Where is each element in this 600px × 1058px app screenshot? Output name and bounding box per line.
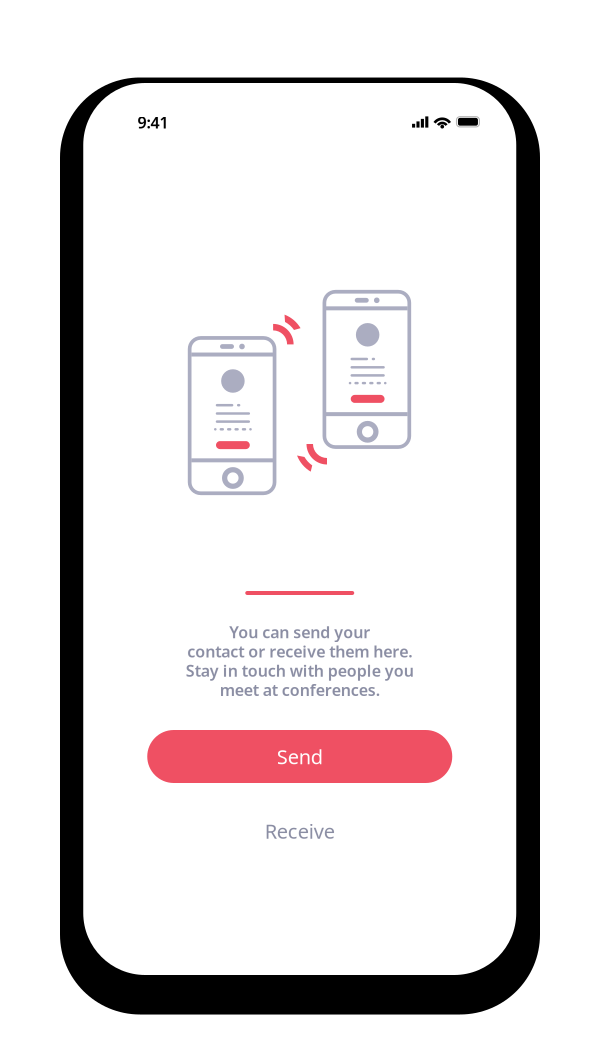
button[interactable]: Receive: [230, 809, 370, 853]
staticText: You can send your: [229, 621, 370, 642]
staticText: meet at conferences.: [220, 679, 380, 700]
staticText: Receive: [265, 818, 335, 844]
staticText: 9:41: [137, 112, 168, 133]
staticText: Send: [277, 743, 323, 770]
staticText: Stay in touch with people you: [186, 660, 414, 681]
staticText: contact or receive them here.: [187, 641, 412, 662]
button[interactable]: Send: [147, 730, 452, 783]
